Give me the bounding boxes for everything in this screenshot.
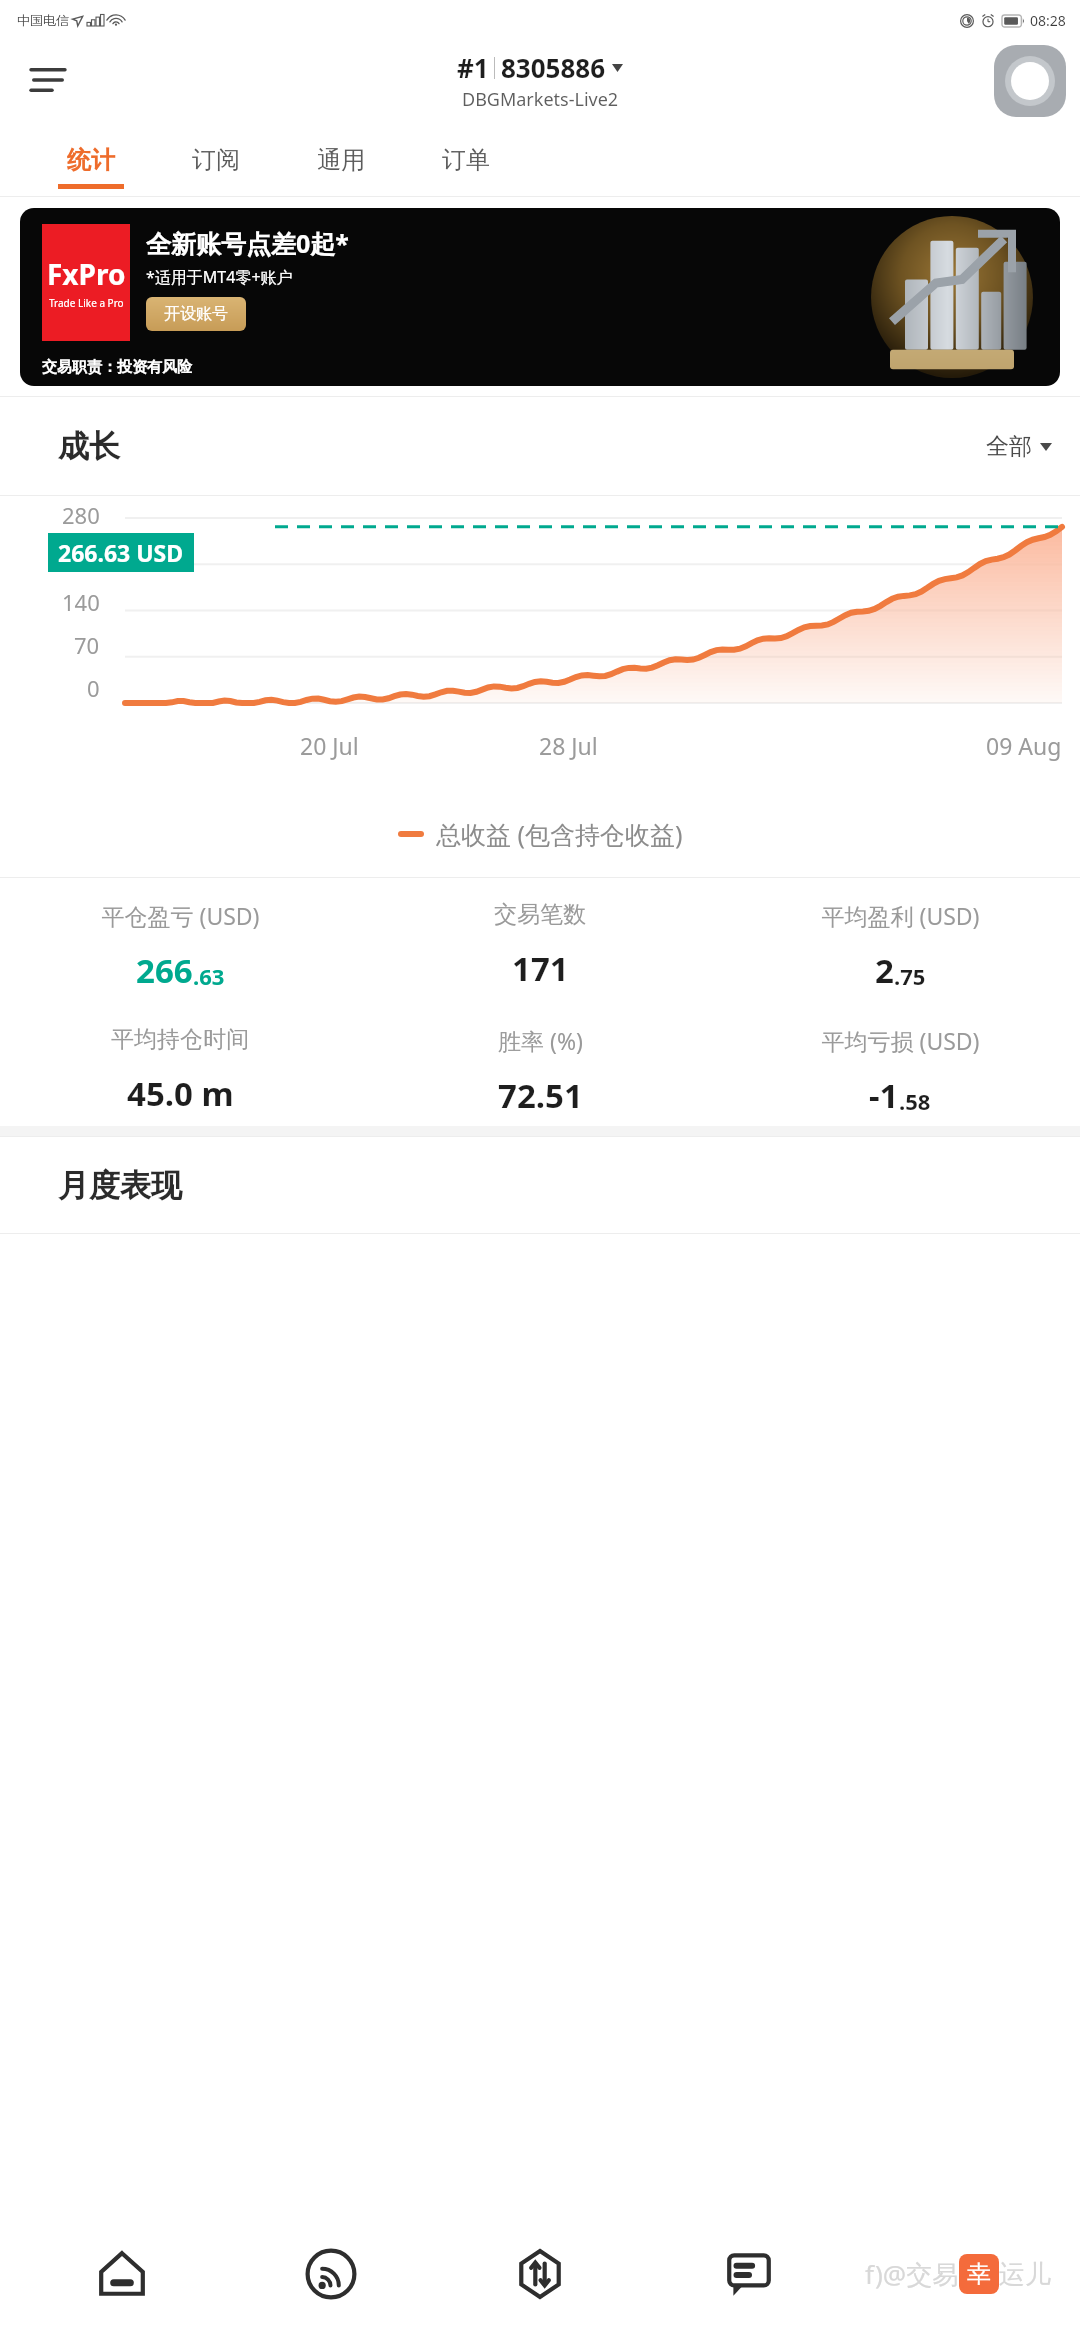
button[interactable]: Messages (644, 2208, 853, 2340)
staticText: .58 (899, 1086, 931, 1116)
staticText: 70 (74, 630, 100, 660)
staticText: 平均持仓时间 (111, 1025, 249, 1054)
staticText: 订单 (442, 145, 490, 175)
button[interactable]: 平均亏损 (USD) (720, 1025, 1080, 1118)
staticText: .63 (193, 961, 225, 991)
staticText: 72.51 (498, 1073, 583, 1118)
staticText: 28 Jul (539, 730, 598, 761)
staticText: DBGMarkets-Live2 (462, 87, 619, 112)
button[interactable]: 订单 (403, 145, 528, 197)
button[interactable]: #1 (457, 50, 623, 112)
staticText: 45.0 m (127, 1071, 234, 1116)
button[interactable]: FxPro (20, 208, 1060, 386)
button[interactable]: 胜率 (%) (360, 1025, 720, 1118)
button[interactable]: Profile (994, 45, 1066, 117)
staticText: FxPro (47, 255, 126, 293)
staticText: 胜率 (%) (498, 1025, 583, 1056)
staticText: 0 (87, 673, 100, 703)
button[interactable]: Quotes (18, 2208, 226, 2340)
staticText: Trade Like a Pro (49, 296, 124, 310)
staticText: 成长 (58, 427, 120, 466)
staticText: 20 Jul (300, 730, 359, 761)
staticText: 09 Aug (986, 730, 1062, 761)
staticText: 08:28 (1030, 11, 1066, 30)
button[interactable]: Menu (20, 52, 76, 108)
staticText: 统计 (67, 145, 115, 175)
staticText: #1 (457, 50, 489, 85)
button[interactable]: 交易笔数 (360, 900, 720, 991)
button[interactable]: 通用 (278, 145, 403, 197)
staticText: 交易笔数 (494, 900, 586, 929)
button[interactable]: Charts (226, 2208, 435, 2340)
staticText: 开设账号 (164, 304, 228, 324)
staticText: 8305886 (501, 50, 606, 85)
staticText: 幸 (967, 2259, 991, 2289)
staticText: 全部 (986, 432, 1032, 461)
button[interactable]: 平均盈利 (USD) (720, 900, 1080, 993)
staticText: 平均亏损 (USD) (821, 1025, 980, 1056)
staticText: .75 (894, 961, 926, 991)
staticText: 通用 (317, 145, 365, 175)
staticText: f)@交易 (865, 2256, 959, 2292)
staticText: 订阅 (192, 145, 240, 175)
staticText: 210 (62, 543, 100, 573)
button[interactable]: 全部 (986, 432, 1052, 461)
button[interactable]: 平均持仓时间 (0, 1025, 360, 1116)
staticText: 266.63 USD (58, 537, 184, 568)
button[interactable]: Trade (435, 2208, 644, 2340)
button[interactable]: 订阅 (153, 145, 278, 197)
button[interactable]: 统计 (28, 145, 153, 197)
staticText: 280 (62, 500, 100, 530)
staticText: 月度表现 (58, 1166, 182, 1205)
button[interactable]: 平仓盈亏 (USD) (0, 900, 360, 993)
staticText: 平均盈利 (USD) (821, 900, 980, 931)
staticText: 平仓盈亏 (USD) (101, 900, 260, 931)
staticText: 2 (875, 948, 894, 993)
staticText: 总收益 (包含持仓收益) (436, 817, 683, 851)
staticText: 266 (136, 948, 193, 993)
staticText: *适用于MT4零+账户 (146, 266, 293, 288)
staticText: 171 (512, 946, 569, 991)
staticText: -1 (869, 1073, 899, 1118)
staticText: 运儿 (999, 2258, 1051, 2291)
staticText: 全新账号点差0起* (146, 226, 349, 260)
button[interactable]: 开设账号 (146, 297, 246, 331)
staticText: 交易职责：投资有风险 (42, 358, 192, 377)
staticText: 中国电信 (17, 12, 69, 28)
staticText: 140 (62, 587, 100, 617)
